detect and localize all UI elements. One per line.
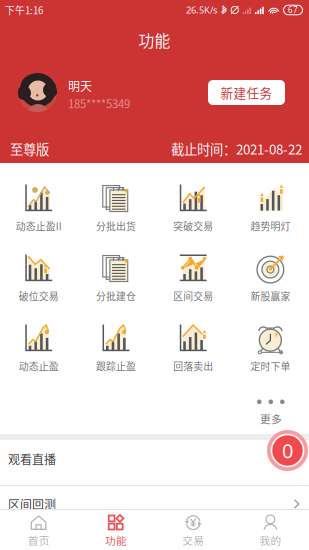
- staticText: 定时下单: [250, 359, 290, 373]
- staticText: 功能: [105, 532, 127, 548]
- staticText: 交易: [182, 532, 204, 548]
- staticText: 下午1:16: [5, 3, 43, 17]
- staticText: 观看直播: [8, 450, 56, 468]
- staticText: 动态止盈II: [16, 219, 62, 233]
- staticText: 回落卖出: [173, 359, 213, 373]
- staticText: 功能: [138, 29, 170, 51]
- button[interactable]: 突破交易: [154, 173, 232, 243]
- button[interactable]: 破位交易: [0, 243, 77, 313]
- button[interactable]: 分批建仓: [77, 243, 154, 313]
- button[interactable]: 跟踪止盈: [77, 313, 154, 383]
- button[interactable]: 区间交易: [154, 243, 232, 313]
- button[interactable]: 功能: [77, 510, 154, 550]
- staticText: 至尊版: [10, 139, 49, 158]
- staticText: 0: [282, 437, 293, 464]
- staticText: 破位交易: [19, 289, 59, 303]
- button[interactable]: 交易: [154, 510, 232, 550]
- staticText: 首页: [28, 532, 50, 548]
- staticText: 跟踪止盈: [96, 359, 136, 373]
- staticText: 区间交易: [173, 289, 213, 303]
- staticText: 新股赢家: [250, 289, 290, 303]
- button[interactable]: 更多: [243, 397, 299, 427]
- button[interactable]: 新股赢家: [232, 243, 309, 313]
- staticText: 26.5K/s: [186, 4, 217, 16]
- staticText: 分批建仓: [96, 289, 136, 303]
- button[interactable]: 分批出货: [77, 173, 154, 243]
- button[interactable]: 首页: [0, 510, 77, 550]
- staticText: 明天: [68, 77, 92, 94]
- staticText: 截止时间：2021-08-22: [171, 139, 302, 158]
- button[interactable]: 趋势明灯: [232, 173, 309, 243]
- staticText: 动态止盈: [19, 359, 59, 373]
- button[interactable]: 区间回测: [0, 492, 309, 516]
- button[interactable]: 观看直播: [0, 447, 309, 471]
- button[interactable]: 动态止盈II: [0, 173, 77, 243]
- button[interactable]: 定时下单: [232, 313, 309, 383]
- button[interactable]: 回落卖出: [154, 313, 232, 383]
- button[interactable]: 新建任务: [208, 80, 285, 105]
- staticText: 67: [288, 5, 298, 15]
- button[interactable]: 动态止盈: [0, 313, 77, 383]
- staticText: 趋势明灯: [250, 219, 290, 233]
- staticText: 新建任务: [220, 83, 272, 101]
- button[interactable]: 我的: [232, 510, 309, 550]
- staticText: 突破交易: [173, 219, 213, 233]
- staticText: 区间回测: [8, 495, 56, 513]
- staticText: 我的: [259, 532, 281, 548]
- staticText: 分批出货: [96, 219, 136, 233]
- staticText: 185****5349: [68, 95, 130, 111]
- staticText: 更多: [260, 411, 282, 426]
